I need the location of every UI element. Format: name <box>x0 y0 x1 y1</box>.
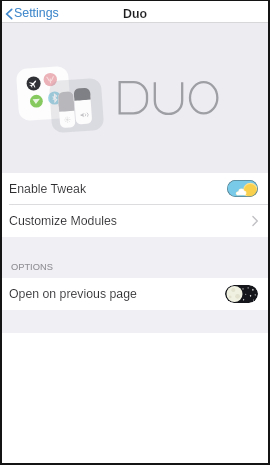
staticText: Enable Tweak <box>9 182 87 196</box>
staticText: Customize Modules <box>9 214 117 228</box>
button[interactable]: Enable Tweak <box>2 173 268 204</box>
staticText: Duo <box>123 7 148 21</box>
staticText: Settings <box>14 6 59 20</box>
staticText: Open on previous page <box>9 287 137 301</box>
button[interactable]: Open on previous page toggle, off <box>225 285 258 303</box>
other: Customize Modules <box>252 216 258 226</box>
button[interactable]: Customize Modules <box>2 205 268 237</box>
button[interactable]: Settings <box>2 2 65 22</box>
button[interactable]: Enable Tweak toggle, on <box>227 180 258 197</box>
button[interactable]: Open on previous page <box>2 278 268 310</box>
staticText: OPTIONS <box>11 262 53 272</box>
